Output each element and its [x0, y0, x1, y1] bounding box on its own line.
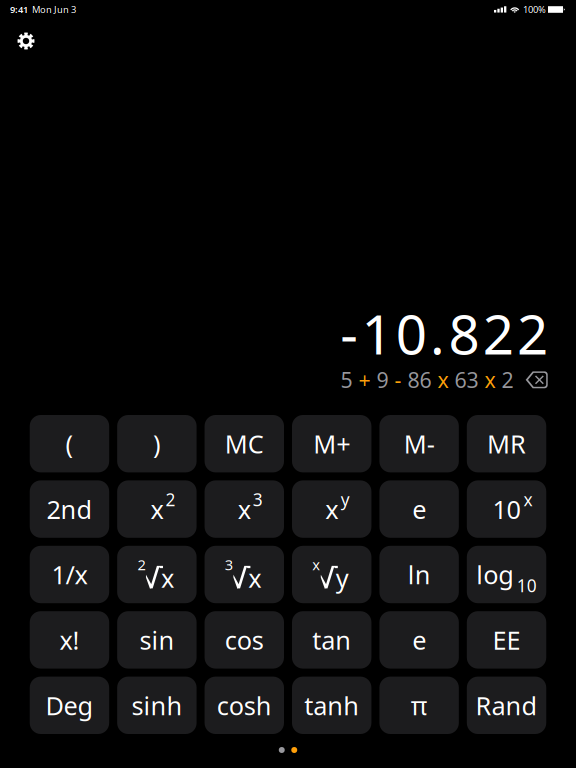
staticText: 2nd: [46, 492, 92, 526]
button[interactable]: 2nd: [30, 480, 109, 538]
staticText: x: [248, 561, 261, 595]
staticText: x: [161, 561, 174, 595]
button[interactable]: log: [467, 546, 546, 603]
staticText: 86: [407, 366, 431, 394]
button[interactable]: EE: [467, 611, 546, 669]
button[interactable]: x: [117, 480, 197, 538]
staticText: y: [341, 488, 350, 511]
staticText: +: [358, 366, 370, 394]
button[interactable]: M-: [379, 415, 459, 472]
staticText: π: [411, 688, 428, 722]
button[interactable]: e: [379, 611, 459, 669]
staticText: 1/x: [51, 558, 87, 591]
staticText: 2: [137, 555, 145, 574]
button[interactable]: tan: [292, 611, 371, 669]
staticText: x: [325, 492, 338, 526]
button[interactable]: x: [292, 480, 371, 538]
button[interactable]: x: [205, 480, 284, 538]
staticText: x: [523, 488, 532, 511]
button[interactable]: 3: [205, 546, 284, 603]
button[interactable]: x: [292, 546, 371, 603]
staticText: 10: [517, 574, 537, 597]
button[interactable]: cosh: [205, 677, 284, 734]
button[interactable]: MR: [467, 415, 546, 472]
staticText: ): [153, 427, 161, 460]
button[interactable]: 10: [467, 480, 546, 538]
staticText: sin: [139, 623, 174, 657]
staticText: Rand: [475, 688, 537, 722]
staticText: 63: [454, 366, 478, 394]
button[interactable]: e: [379, 480, 459, 538]
button[interactable]: Rand: [467, 677, 546, 734]
staticText: -: [394, 366, 401, 394]
button[interactable]: M+: [292, 415, 371, 472]
staticText: EE: [492, 623, 520, 657]
button[interactable]: Settings: [4, 24, 48, 58]
staticText: -10.822: [340, 297, 548, 370]
staticText: tanh: [304, 688, 359, 722]
button[interactable]: tanh: [292, 677, 371, 734]
staticText: 2: [165, 488, 175, 511]
staticText: M+: [313, 427, 350, 460]
button[interactable]: MC: [205, 415, 284, 472]
button[interactable]: 2: [117, 546, 197, 603]
staticText: cos: [225, 623, 264, 657]
staticText: x!: [59, 623, 79, 657]
staticText: x: [150, 492, 163, 526]
staticText: (: [65, 427, 73, 460]
button[interactable]: x!: [30, 611, 109, 669]
staticText: 9: [376, 366, 388, 394]
staticText: 3: [225, 555, 233, 574]
staticText: 9:41: [10, 3, 28, 16]
staticText: 100%: [523, 3, 546, 16]
staticText: ln: [408, 558, 431, 591]
staticText: MC: [225, 427, 264, 460]
staticText: sinh: [131, 688, 182, 722]
button[interactable]: π: [379, 677, 459, 734]
staticText: 5: [340, 366, 352, 394]
staticText: x: [484, 366, 495, 394]
staticText: log: [476, 558, 514, 591]
staticText: e: [412, 623, 426, 657]
button[interactable]: sinh: [117, 677, 197, 734]
staticText: x: [312, 555, 320, 574]
staticText: y: [336, 561, 349, 595]
button[interactable]: sin: [117, 611, 197, 669]
staticText: Deg: [45, 688, 93, 722]
button[interactable]: (: [30, 415, 109, 472]
staticText: Mon Jun 3: [32, 3, 76, 16]
button[interactable]: Deg: [30, 677, 109, 734]
staticText: cosh: [217, 688, 272, 722]
staticText: e: [412, 492, 426, 526]
button[interactable]: Delete: [524, 371, 548, 389]
button[interactable]: 1/x: [30, 546, 109, 603]
staticText: 3: [253, 488, 263, 511]
staticText: x: [437, 366, 448, 394]
staticText: MR: [487, 427, 526, 460]
button[interactable]: ln: [379, 546, 459, 603]
staticText: 10: [492, 492, 520, 526]
staticText: 2: [501, 366, 513, 394]
button[interactable]: ): [117, 415, 197, 472]
staticText: x: [238, 492, 251, 526]
staticText: M-: [404, 427, 435, 460]
button[interactable]: cos: [205, 611, 284, 669]
staticText: tan: [312, 623, 351, 657]
